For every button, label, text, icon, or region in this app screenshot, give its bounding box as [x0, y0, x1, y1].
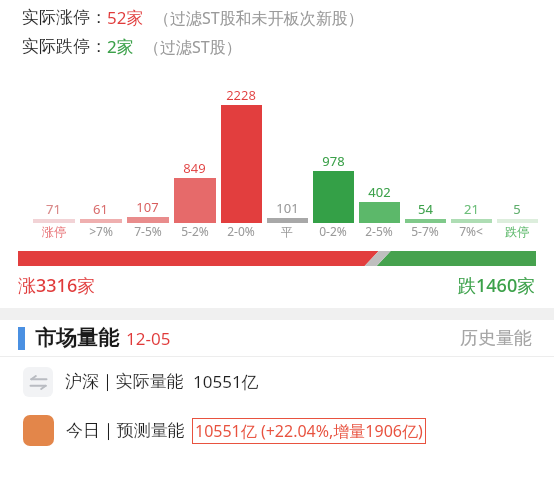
- staticText: 10551亿: [193, 370, 259, 393]
- staticText: 849: [183, 159, 206, 177]
- staticText: 978: [322, 152, 345, 170]
- staticText: 历史量能: [460, 327, 532, 350]
- staticText: 跌1460家: [458, 273, 536, 298]
- staticText: 实际跌停：: [22, 36, 107, 57]
- staticText: 101: [276, 199, 299, 217]
- staticText: 涨3316家: [18, 273, 96, 298]
- staticText: 平: [281, 224, 293, 239]
- staticText: 52家: [107, 6, 144, 29]
- staticText: 12-05: [126, 327, 171, 350]
- staticText: 2-5%: [365, 223, 393, 239]
- staticText: 跌停: [505, 224, 529, 239]
- other: 今日: [23, 415, 54, 446]
- staticText: 71: [46, 200, 61, 218]
- staticText: 市场量能: [35, 325, 119, 351]
- staticText: 10551亿 (+22.04%,增量1906亿): [195, 420, 423, 442]
- other: 沪深: [23, 367, 53, 397]
- staticText: 61: [93, 200, 108, 218]
- staticText: （过滤ST股）: [144, 36, 242, 58]
- staticText: 2-0%: [227, 223, 255, 239]
- staticText: （过滤ST股和未开板次新股）: [154, 7, 364, 29]
- staticText: 0-2%: [319, 223, 347, 239]
- staticText: 实际涨停：: [22, 7, 107, 28]
- staticText: 2家: [107, 35, 134, 58]
- staticText: >7%: [89, 223, 113, 239]
- staticText: 5-2%: [181, 223, 209, 239]
- staticText: 5: [513, 200, 521, 218]
- staticText: 2228: [226, 86, 256, 104]
- staticText: 涨停: [42, 224, 66, 239]
- button[interactable]: 今日: [0, 406, 554, 455]
- staticText: 402: [368, 183, 391, 201]
- staticText: 5-7%: [411, 223, 439, 239]
- button[interactable]: 沪深: [0, 357, 554, 406]
- staticText: 沪深｜实际量能: [65, 371, 184, 392]
- staticText: 7%<: [459, 223, 483, 239]
- staticText: 今日｜预测量能: [66, 420, 185, 441]
- button[interactable]: 历史量能: [456, 323, 536, 354]
- staticText: 107: [136, 198, 159, 216]
- staticText: 54: [418, 200, 433, 218]
- staticText: 21: [464, 200, 479, 218]
- staticText: 7-5%: [134, 223, 162, 239]
